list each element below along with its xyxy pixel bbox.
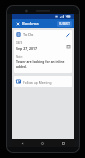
staticText: To Do bbox=[23, 32, 34, 37]
button[interactable]: Note: bbox=[14, 53, 72, 71]
other: Pick date bbox=[66, 44, 70, 48]
staticText: Sep 27, 2017 bbox=[16, 46, 38, 51]
button[interactable]: Navigate back bbox=[14, 20, 21, 27]
button[interactable]: Follow up Meeting bbox=[14, 76, 72, 87]
button[interactable]: SUBMIT bbox=[57, 21, 72, 27]
button[interactable]: Home bbox=[32, 139, 53, 147]
button[interactable]: DATE bbox=[14, 39, 72, 53]
staticText: Bookmark Crane Services bbox=[22, 21, 39, 27]
button[interactable]: Edit bbox=[65, 32, 70, 37]
staticText: SUBMIT bbox=[59, 22, 70, 26]
staticText: Follow up Meeting bbox=[23, 80, 52, 84]
button[interactable]: To Do bbox=[14, 30, 72, 39]
staticText: DATE bbox=[16, 41, 23, 45]
button[interactable]: Recent apps bbox=[53, 139, 74, 147]
staticText: Note: bbox=[16, 55, 23, 59]
staticText: Tower are looking for an inline items wi… bbox=[16, 60, 70, 64]
staticText: added. bbox=[16, 65, 27, 69]
button[interactable]: Back bbox=[12, 139, 32, 147]
